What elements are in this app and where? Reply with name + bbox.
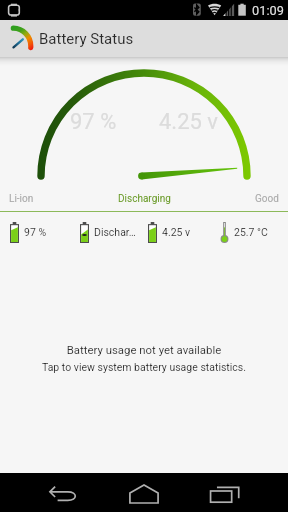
- staticText: 4.25 v: [162, 226, 191, 238]
- button[interactable]: 25.7 °C: [210, 212, 288, 252]
- staticText: 25.7 °C: [234, 226, 268, 238]
- button[interactable]: Recent apps: [200, 473, 248, 512]
- staticText: Tap to view system battery usage statist…: [0, 361, 288, 373]
- staticText: Dischar…: [94, 226, 136, 238]
- button[interactable]: 4.25 v: [139, 212, 210, 252]
- staticText: 97 %: [24, 226, 47, 238]
- staticText: Li-ion: [9, 193, 34, 205]
- button[interactable]: Dischar…: [70, 212, 139, 252]
- staticText: Discharging: [118, 193, 171, 205]
- staticText: 01:09: [252, 3, 284, 18]
- staticText: Battery Status: [39, 30, 134, 48]
- staticText: 97 %: [70, 109, 117, 135]
- staticText: Battery usage not yet available: [0, 343, 288, 356]
- staticText: 4.25 v: [159, 109, 219, 135]
- staticText: Good: [255, 193, 279, 205]
- button[interactable]: 97 %: [0, 212, 70, 252]
- button[interactable]: Back: [40, 473, 88, 512]
- button[interactable]: Home: [120, 473, 168, 512]
